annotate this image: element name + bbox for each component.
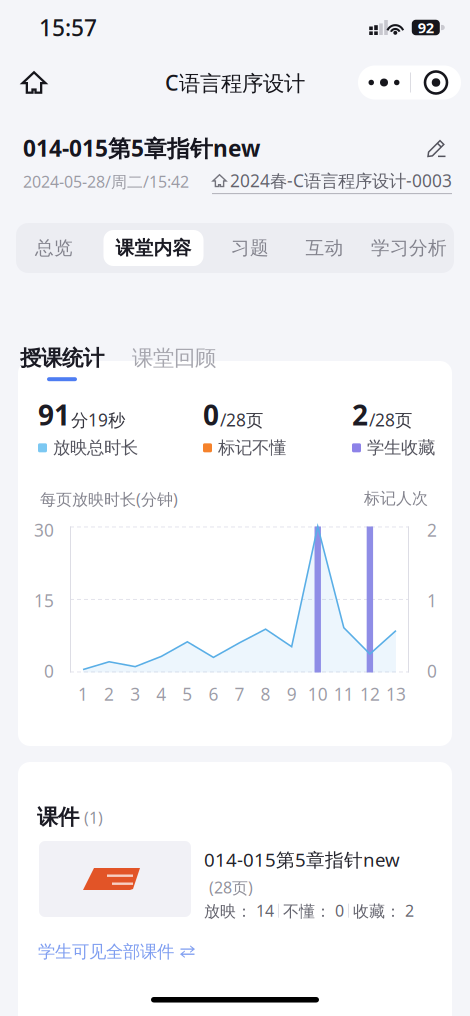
- staticText: 014-015第5章指针new: [23, 133, 260, 163]
- staticText: 11: [334, 682, 354, 705]
- staticText: 30: [34, 518, 54, 541]
- button[interactable]: 授课统计: [20, 345, 104, 381]
- staticText: 互动: [305, 236, 343, 259]
- button[interactable]: More options: [358, 65, 461, 99]
- staticText: /28页: [220, 408, 263, 431]
- staticText: 课堂内容: [115, 236, 191, 259]
- staticText: 0: [203, 396, 219, 433]
- staticText: 6: [208, 682, 218, 705]
- button[interactable]: 课堂回顾: [132, 345, 216, 381]
- button[interactable]: Home: [10, 59, 58, 105]
- staticText: 3: [130, 682, 140, 705]
- button[interactable]: Edit: [422, 134, 452, 162]
- button[interactable]: 互动: [296, 230, 352, 266]
- staticText: 2024春-C语言程序设计-0003: [230, 169, 452, 192]
- staticText: 学生可见全部课件: [38, 941, 174, 962]
- staticText: 放映总时长: [53, 437, 138, 458]
- staticText: 12: [360, 682, 380, 705]
- button[interactable]: 总览: [23, 230, 85, 266]
- button[interactable]: Courseware preview: [39, 841, 191, 917]
- button[interactable]: 学习分析: [371, 230, 447, 266]
- staticText: 5: [182, 682, 192, 705]
- staticText: 习题: [231, 236, 269, 259]
- button[interactable]: 2024春-C语言程序设计-0003: [212, 169, 452, 194]
- staticText: 标记人次: [364, 488, 428, 508]
- staticText: /28页: [369, 408, 412, 431]
- staticText: 2: [352, 396, 368, 433]
- staticText: 总览: [35, 236, 73, 259]
- staticText: 9: [287, 682, 297, 705]
- staticText: 每页放映时长(分钟): [40, 488, 178, 510]
- staticText: 1: [427, 589, 437, 612]
- button[interactable]: 课堂内容: [103, 230, 203, 266]
- staticText: 91: [38, 396, 70, 433]
- staticText: 分19秒: [71, 408, 125, 431]
- button[interactable]: 学生可见全部课件: [38, 941, 196, 962]
- staticText: 014-015第5章指针new: [204, 847, 400, 872]
- staticText: 0: [427, 659, 437, 682]
- staticText: 不懂： 0: [283, 900, 344, 921]
- staticText: 2: [427, 518, 437, 541]
- staticText: 课堂回顾: [132, 345, 216, 371]
- staticText: 标记不懂: [218, 437, 286, 458]
- button[interactable]: 014-015第5章指针new: [204, 847, 454, 921]
- staticText: 15:57: [39, 12, 97, 42]
- staticText: (1): [84, 807, 103, 828]
- staticText: 收藏： 2: [353, 900, 414, 921]
- staticText: 授课统计: [20, 345, 104, 371]
- staticText: 2: [104, 682, 114, 705]
- staticText: 学习分析: [371, 236, 447, 259]
- staticText: 4: [156, 682, 166, 705]
- staticText: 92: [418, 18, 434, 37]
- button[interactable]: 习题: [222, 230, 278, 266]
- staticText: 课件: [37, 804, 79, 830]
- staticText: 7: [234, 682, 244, 705]
- staticText: 13: [386, 682, 406, 705]
- staticText: 15: [34, 589, 54, 612]
- staticText: 0: [44, 659, 54, 682]
- staticText: 2024-05-28/周二/15:42: [23, 171, 189, 192]
- staticText: 10: [308, 682, 328, 705]
- staticText: 1: [78, 682, 88, 705]
- staticText: 学生收藏: [367, 437, 435, 458]
- staticText: C语言程序设计: [165, 68, 305, 97]
- staticText: 8: [261, 682, 271, 705]
- staticText: (28页): [209, 877, 253, 898]
- staticText: 放映： 14: [204, 900, 274, 921]
